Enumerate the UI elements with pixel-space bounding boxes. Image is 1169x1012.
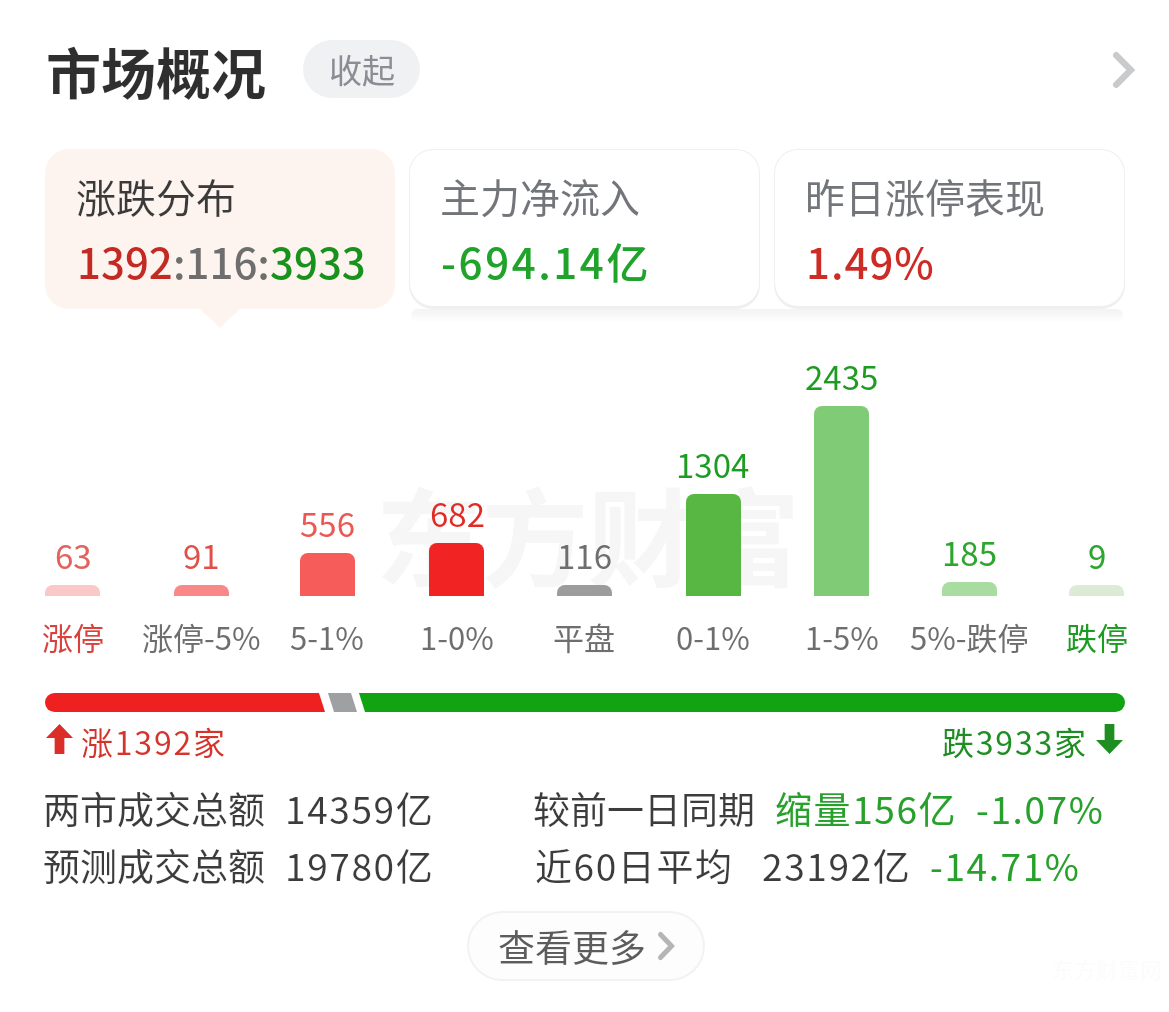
- staticText: 1-5%: [805, 614, 879, 659]
- staticText: 昨日涨停表现: [805, 167, 1045, 225]
- staticText: 预测成交总额: [43, 838, 265, 892]
- staticText: -1.07%: [976, 781, 1105, 835]
- button[interactable]: 查看更多: [467, 911, 705, 981]
- staticText: 较前一日同期: [533, 781, 755, 835]
- staticText: 涨1392家: [81, 718, 227, 760]
- staticText: 3933: [270, 230, 366, 291]
- staticText: 19780亿: [285, 838, 435, 892]
- staticText: 主力净流入: [440, 167, 640, 225]
- button[interactable]: 收起: [303, 40, 420, 98]
- button[interactable]: 主力净流入: [409, 149, 760, 309]
- staticText: 东方财富: [376, 455, 800, 608]
- staticText: 涨停: [42, 614, 104, 659]
- staticText: :116:: [173, 230, 270, 291]
- button[interactable]: 昨日涨停表现: [774, 149, 1125, 309]
- staticText: 23192亿: [762, 838, 912, 892]
- staticText: 0-1%: [676, 614, 750, 659]
- staticText: -14.71%: [930, 838, 1081, 892]
- staticText: 63: [55, 531, 92, 579]
- staticText: 收起: [329, 45, 395, 93]
- staticText: -694.14亿: [441, 230, 652, 291]
- staticText: 116: [557, 531, 612, 579]
- button[interactable]: Open market overview: [1078, 25, 1169, 115]
- staticText: 1392: [77, 230, 173, 291]
- staticText: 两市成交总额: [43, 781, 265, 835]
- staticText: 近60日平均: [535, 838, 734, 892]
- staticText: 平盘: [553, 614, 615, 659]
- staticText: 1304: [676, 440, 750, 488]
- staticText: 682: [430, 489, 485, 537]
- button[interactable]: 涨跌分布: [45, 149, 395, 309]
- staticText: 91: [183, 531, 220, 579]
- staticText: 5-1%: [290, 614, 364, 659]
- staticText: 1-0%: [420, 614, 494, 659]
- staticText: 185: [942, 528, 997, 576]
- staticText: 556: [300, 499, 355, 547]
- staticText: 9: [1088, 531, 1107, 579]
- staticText: 1.49%: [806, 230, 935, 291]
- staticText: 5%-跌停: [910, 614, 1029, 659]
- staticText: 涨停-5%: [142, 614, 261, 659]
- staticText: 跌3933家: [942, 718, 1088, 760]
- staticText: 查看更多: [498, 919, 646, 973]
- staticText: 2435: [805, 352, 879, 400]
- staticText: 14359亿: [285, 781, 435, 835]
- staticText: 市场概况: [46, 30, 267, 110]
- staticText: 缩量156亿: [775, 781, 958, 835]
- staticText: 跌停: [1066, 614, 1128, 659]
- staticText: 涨跌分布: [76, 167, 236, 225]
